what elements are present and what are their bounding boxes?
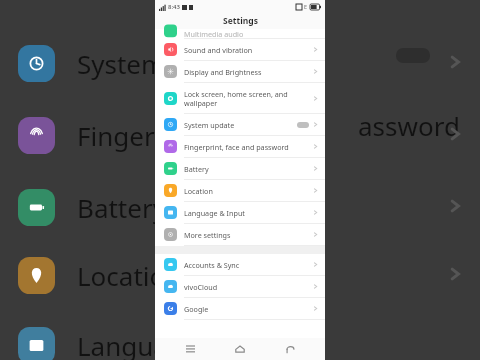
staticText: Fingerp: [77, 118, 171, 153]
button[interactable]: Home: [225, 338, 255, 360]
staticText: More settings: [184, 230, 313, 240]
staticText: Battery: [184, 164, 313, 174]
button[interactable]: Fingerprint, face and password: [155, 136, 325, 157]
button[interactable]: Accounts & Sync: [155, 254, 325, 275]
button[interactable]: Multimedia audio: [155, 29, 325, 38]
staticText: System update: [184, 120, 297, 130]
button[interactable]: Back: [275, 338, 305, 360]
button[interactable]: More settings: [155, 224, 325, 245]
button[interactable]: Location: [155, 180, 325, 201]
button[interactable]: Google: [155, 298, 325, 319]
button[interactable]: vivoCloud: [155, 276, 325, 297]
button[interactable]: Sound and vibration: [155, 39, 325, 60]
staticText: Langua: [77, 328, 168, 360]
button[interactable]: Display and Brightness: [155, 61, 325, 82]
button[interactable]: Lock screen, home screen, and wallpaper: [155, 83, 325, 113]
staticText: assword: [358, 108, 460, 143]
staticText: Display and Brightness: [184, 67, 313, 77]
staticText: Fingerprint, face and password: [184, 142, 313, 152]
button[interactable]: Battery: [155, 158, 325, 179]
staticText: Multimedia audio: [184, 29, 244, 38]
staticText: Locatio: [77, 258, 166, 293]
staticText: Battery: [77, 190, 166, 225]
staticText: Language & Input: [184, 208, 313, 218]
staticText: Google: [184, 304, 313, 314]
staticText: System: [77, 46, 166, 81]
staticText: Accounts & Sync: [184, 260, 313, 270]
staticText: Settings: [223, 15, 258, 27]
button[interactable]: Language & Input: [155, 202, 325, 223]
staticText: Location: [184, 186, 313, 196]
staticText: Lock screen, home screen, and wallpaper: [184, 89, 313, 108]
staticText: Sound and vibration: [184, 45, 313, 55]
button[interactable]: Recents: [175, 338, 205, 360]
staticText: 8:43: [168, 3, 180, 11]
staticText: E: [304, 3, 308, 10]
staticText: vivoCloud: [184, 282, 313, 292]
button[interactable]: System update: [155, 114, 325, 135]
